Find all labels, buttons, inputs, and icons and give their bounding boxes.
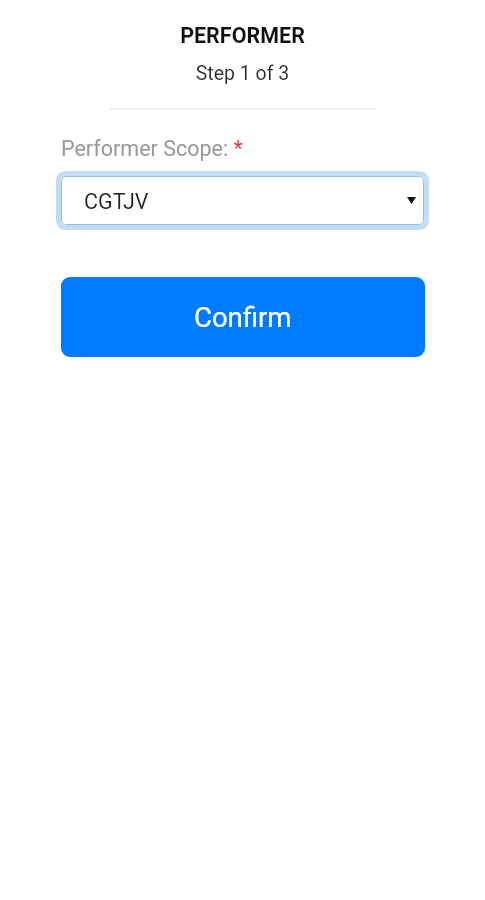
other: Open dropdown [407, 197, 416, 204]
staticText: PERFORMER [0, 23, 485, 48]
staticText: Step 1 of 3 [0, 62, 485, 85]
button[interactable]: Confirm [61, 277, 425, 357]
staticText: Performer Scope: * [61, 136, 243, 161]
button[interactable]: CGTJV [61, 176, 424, 225]
staticText: Confirm [194, 301, 292, 333]
staticText: CGTJV [84, 189, 149, 214]
